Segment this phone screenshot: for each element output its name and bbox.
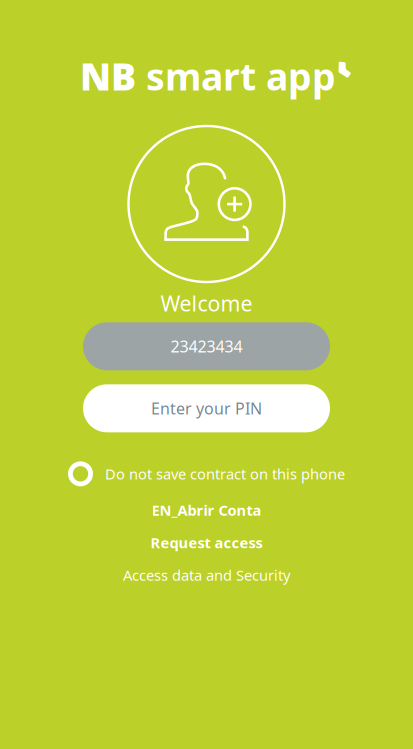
staticText: Welcome (160, 289, 252, 317)
staticText: EN_Abrir Conta (151, 500, 261, 520)
staticText: smart app (136, 51, 336, 101)
staticText: Enter your PIN (151, 398, 262, 419)
button[interactable]: Access data and Security (0, 565, 413, 585)
staticText: 23423434 (170, 336, 242, 357)
staticText: Do not save contract on this phone (105, 464, 345, 484)
staticText: Request access (150, 533, 262, 552)
button[interactable]: EN_Abrir Conta (0, 500, 413, 520)
button[interactable]: Do not save contract on this phone (68, 461, 345, 486)
button[interactable]: Request access (0, 533, 413, 552)
staticText: NB (80, 51, 136, 101)
button[interactable]: Enter your PIN (83, 384, 330, 432)
staticText: Access data and Security (123, 565, 290, 585)
button[interactable]: 23423434 (83, 322, 330, 370)
